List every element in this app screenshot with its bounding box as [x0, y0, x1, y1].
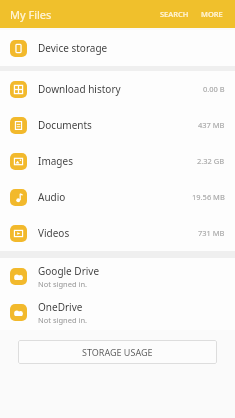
- other: AUDIO: [10, 189, 27, 206]
- other: CLOUD: [10, 268, 27, 285]
- staticText: 2.32 GB: [197, 156, 225, 166]
- staticText: Videos: [38, 226, 198, 240]
- button[interactable]: MORE: [197, 5, 227, 23]
- staticText: STORAGE USAGE: [82, 346, 153, 358]
- other: GRID: [10, 81, 27, 98]
- staticText: Download history: [38, 82, 203, 96]
- button[interactable]: PHONE: [0, 30, 235, 66]
- staticText: Audio: [38, 190, 192, 204]
- other: CLOUD: [10, 304, 27, 321]
- staticText: Documents: [38, 118, 198, 132]
- staticText: Not signed in.: [38, 279, 88, 289]
- button[interactable]: STORAGE USAGE: [18, 340, 217, 364]
- other: DOC: [10, 117, 27, 134]
- staticText: OneDrive: [38, 300, 83, 314]
- other: IMAGE: [10, 153, 27, 170]
- staticText: 0.00 B: [203, 84, 225, 94]
- staticText: My Files: [10, 7, 52, 22]
- button[interactable]: GRID: [0, 71, 235, 107]
- staticText: Device storage: [38, 41, 225, 55]
- staticText: MORE: [201, 9, 223, 19]
- staticText: 19.56 MB: [192, 192, 225, 202]
- staticText: Images: [38, 154, 197, 168]
- staticText: SEARCH: [160, 9, 189, 19]
- other: VIDEO: [10, 225, 27, 242]
- button[interactable]: CLOUD: [0, 258, 235, 294]
- staticText: 437 MB: [198, 120, 225, 130]
- button[interactable]: AUDIO: [0, 179, 235, 215]
- other: PHONE: [10, 40, 27, 57]
- staticText: Not signed in.: [38, 315, 88, 325]
- button[interactable]: IMAGE: [0, 143, 235, 179]
- button[interactable]: CLOUD: [0, 294, 235, 330]
- staticText: 731 MB: [198, 228, 225, 238]
- staticText: Google Drive: [38, 264, 100, 278]
- button[interactable]: VIDEO: [0, 215, 235, 251]
- button[interactable]: DOC: [0, 107, 235, 143]
- button[interactable]: SEARCH: [156, 5, 193, 23]
